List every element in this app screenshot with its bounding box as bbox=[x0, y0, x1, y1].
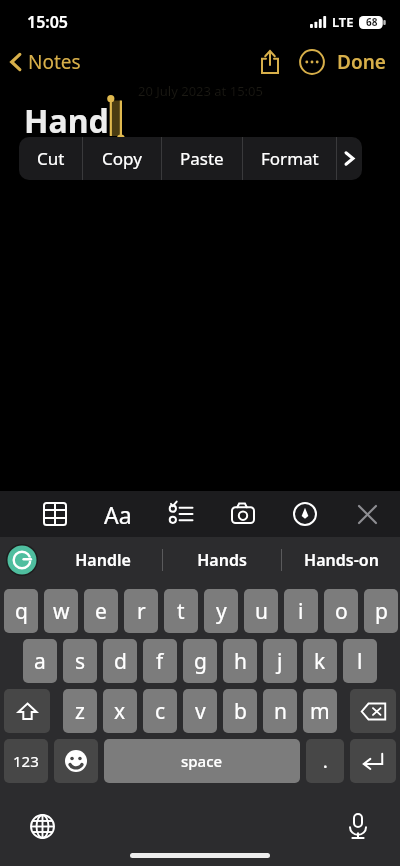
button[interactable]: b bbox=[223, 689, 257, 733]
staticText: l bbox=[357, 647, 363, 676]
button[interactable]: Emoji bbox=[54, 739, 98, 783]
button[interactable]: Dictation bbox=[336, 804, 380, 848]
staticText: c bbox=[155, 697, 166, 726]
staticText: Hand bbox=[24, 99, 109, 143]
staticText: Handle bbox=[75, 549, 131, 571]
button[interactable]: y bbox=[204, 589, 238, 633]
button[interactable]: Insert table bbox=[32, 491, 78, 537]
button[interactable]: c bbox=[143, 689, 177, 733]
staticText: 20 July 2023 at 15:05 bbox=[138, 82, 263, 100]
staticText: t bbox=[177, 597, 185, 626]
staticText: Done bbox=[337, 49, 386, 75]
staticText: j bbox=[277, 647, 283, 676]
button[interactable]: i bbox=[284, 589, 318, 633]
button[interactable]: r bbox=[124, 589, 158, 633]
button[interactable]: 123 bbox=[4, 739, 48, 783]
button[interactable]: Backspace bbox=[350, 689, 396, 733]
button[interactable]: z bbox=[63, 689, 97, 733]
staticText: w bbox=[53, 597, 70, 626]
staticText: a bbox=[34, 647, 46, 676]
button[interactable]: x bbox=[103, 689, 137, 733]
button[interactable]: Change keyboard language bbox=[20, 804, 64, 848]
button[interactable]: e bbox=[84, 589, 118, 633]
staticText: v bbox=[195, 697, 206, 726]
button[interactable]: Hands-on bbox=[282, 537, 400, 583]
staticText: r bbox=[137, 597, 146, 626]
button[interactable]: Paste bbox=[162, 137, 242, 180]
button[interactable]: Handle bbox=[44, 537, 162, 583]
button[interactable]: a bbox=[23, 639, 57, 683]
staticText: h bbox=[234, 647, 247, 676]
staticText: x bbox=[114, 697, 126, 726]
staticText: 15:05 bbox=[27, 11, 69, 33]
staticText: g bbox=[194, 647, 207, 676]
staticText: e bbox=[95, 597, 107, 626]
button[interactable]: l bbox=[343, 639, 377, 683]
button[interactable]: n bbox=[263, 689, 297, 733]
button[interactable]: Hands bbox=[163, 537, 281, 583]
button[interactable]: Copy bbox=[83, 137, 161, 180]
staticText: f bbox=[156, 647, 164, 676]
button[interactable]: Share bbox=[249, 41, 291, 83]
staticText: k bbox=[314, 647, 326, 676]
button[interactable]: s bbox=[63, 639, 97, 683]
button[interactable]: Grammarly bbox=[0, 537, 44, 583]
button[interactable]: Camera bbox=[220, 491, 266, 537]
button[interactable]: . bbox=[306, 739, 344, 783]
button[interactable]: More options bbox=[291, 41, 333, 83]
staticText: Copy bbox=[102, 147, 142, 170]
staticText: q bbox=[15, 597, 28, 626]
button[interactable]: p bbox=[364, 589, 398, 633]
button[interactable]: g bbox=[183, 639, 217, 683]
button[interactable]: j bbox=[263, 639, 297, 683]
button[interactable]: More actions bbox=[337, 137, 362, 180]
button[interactable]: Format bbox=[243, 137, 336, 180]
button[interactable]: o bbox=[324, 589, 358, 633]
button[interactable]: u bbox=[244, 589, 278, 633]
button[interactable]: d bbox=[103, 639, 137, 683]
staticText: 68 bbox=[366, 15, 378, 29]
button[interactable]: Cut bbox=[19, 137, 82, 180]
staticText: Hands-on bbox=[304, 549, 379, 571]
button[interactable]: Return bbox=[350, 739, 396, 783]
staticText: m bbox=[310, 697, 330, 726]
button[interactable]: Markup bbox=[282, 491, 328, 537]
staticText: Hands bbox=[197, 549, 247, 571]
button[interactable]: Text formatting bbox=[95, 491, 141, 537]
button[interactable]: v bbox=[183, 689, 217, 733]
staticText: u bbox=[255, 597, 268, 626]
button[interactable]: w bbox=[44, 589, 78, 633]
button[interactable]: Checklist bbox=[158, 491, 204, 537]
button[interactable]: Close keyboard bbox=[344, 491, 390, 537]
button[interactable]: q bbox=[4, 589, 38, 633]
button[interactable]: space bbox=[104, 739, 300, 783]
staticText: Notes bbox=[28, 49, 81, 75]
button[interactable]: Notes bbox=[0, 45, 89, 79]
staticText: Aa bbox=[104, 499, 132, 530]
button[interactable]: f bbox=[143, 639, 177, 683]
staticText: b bbox=[234, 697, 247, 726]
staticText: z bbox=[75, 697, 85, 726]
staticText: y bbox=[216, 597, 227, 626]
staticText: s bbox=[75, 647, 86, 676]
staticText: Cut bbox=[37, 147, 65, 170]
staticText: . bbox=[323, 750, 328, 773]
button[interactable]: h bbox=[223, 639, 257, 683]
button[interactable]: Done bbox=[333, 43, 400, 81]
button[interactable]: m bbox=[303, 689, 337, 733]
staticText: 123 bbox=[13, 751, 39, 771]
staticText: Paste bbox=[180, 147, 224, 170]
button[interactable]: Shift bbox=[4, 689, 50, 733]
staticText: p bbox=[375, 597, 388, 626]
staticText: d bbox=[114, 647, 127, 676]
staticText: i bbox=[298, 597, 304, 626]
staticText: space bbox=[181, 751, 223, 771]
staticText: n bbox=[274, 697, 287, 726]
staticText: LTE bbox=[332, 13, 354, 31]
button[interactable]: t bbox=[164, 589, 198, 633]
staticText: Format bbox=[261, 147, 319, 170]
staticText: o bbox=[335, 597, 348, 626]
button[interactable]: k bbox=[303, 639, 337, 683]
